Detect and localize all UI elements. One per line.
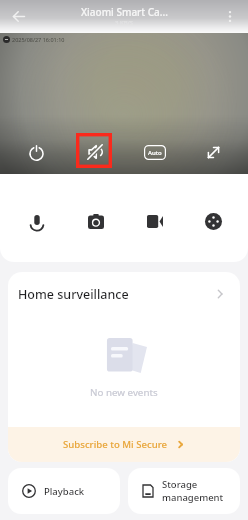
staticText: Storage management	[162, 478, 232, 504]
staticText: Subscribe to Mi Secure	[63, 438, 168, 451]
staticText: Home surveillance	[18, 286, 129, 303]
staticText: Xiaomi Smart Ca...	[81, 5, 168, 19]
button[interactable]: Unmute	[66, 132, 125, 172]
button[interactable]: Pan and tilt	[184, 197, 243, 245]
button[interactable]: Power	[7, 132, 66, 172]
button[interactable]: More options	[212, 0, 248, 33]
button[interactable]: Home surveillance	[8, 272, 240, 316]
staticText: Playback	[44, 485, 85, 498]
button[interactable]: Record video	[125, 197, 184, 245]
button[interactable]: Storage management	[128, 468, 240, 514]
staticText: 2025/08/27 16:01:10	[12, 36, 65, 43]
button[interactable]: Back	[0, 0, 36, 33]
staticText: No new events	[90, 386, 158, 399]
staticText: 3 KB/S	[115, 19, 134, 27]
button[interactable]: Playback	[8, 468, 120, 514]
button[interactable]: Fullscreen	[184, 132, 243, 172]
button[interactable]: Take photo	[66, 197, 125, 245]
button[interactable]: Microphone	[7, 197, 66, 245]
staticText: Auto	[148, 149, 162, 157]
button[interactable]: Subscribe to Mi Secure	[8, 427, 240, 462]
button[interactable]: Auto quality	[125, 132, 184, 172]
